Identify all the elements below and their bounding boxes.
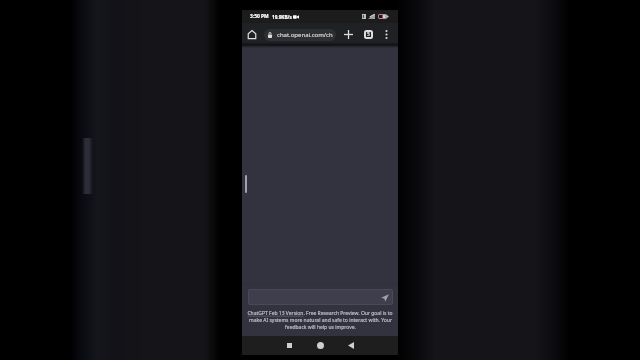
staticText: 19.9KB/s xyxy=(272,14,292,20)
button[interactable]: More options xyxy=(378,23,394,46)
button[interactable]: New tab xyxy=(340,23,356,46)
button[interactable]: chat.openai.com/ch xyxy=(264,29,336,41)
staticText: make AI systems more natural and safe to… xyxy=(249,317,392,324)
button[interactable]: Home xyxy=(244,23,260,46)
button[interactable]: Tabs xyxy=(360,23,376,46)
staticText: chat.openai.com/ch xyxy=(277,31,333,39)
button[interactable]: Recents xyxy=(280,336,298,355)
button[interactable]: Back xyxy=(342,336,360,355)
staticText: 5 xyxy=(367,31,370,38)
button[interactable]: Home xyxy=(311,336,329,355)
staticText: feedback will help us improve. xyxy=(285,324,356,331)
staticText: 3:50 PM xyxy=(250,13,269,20)
button[interactable]: ChatGPT Feb 13 Version. Free Research Pr… xyxy=(247,310,393,317)
button[interactable]: Send xyxy=(248,289,393,305)
other: Send xyxy=(380,293,390,303)
